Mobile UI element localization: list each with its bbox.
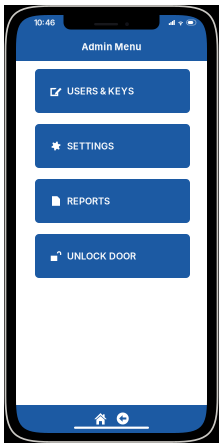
- button[interactable]: USERS & KEYS: [35, 69, 190, 113]
- button[interactable]: REPORTS: [35, 179, 190, 223]
- button[interactable]: SETTINGS: [35, 124, 190, 168]
- staticText: UNLOCK DOOR: [67, 250, 136, 262]
- staticText: 10:46: [34, 18, 55, 27]
- button[interactable]: Home: [94, 412, 107, 424]
- staticText: SETTINGS: [67, 140, 114, 152]
- staticText: USERS & KEYS: [67, 85, 134, 97]
- staticText: Admin Menu: [81, 41, 141, 52]
- button[interactable]: Back: [117, 412, 129, 424]
- staticText: REPORTS: [67, 195, 110, 207]
- button[interactable]: UNLOCK DOOR: [35, 234, 190, 278]
